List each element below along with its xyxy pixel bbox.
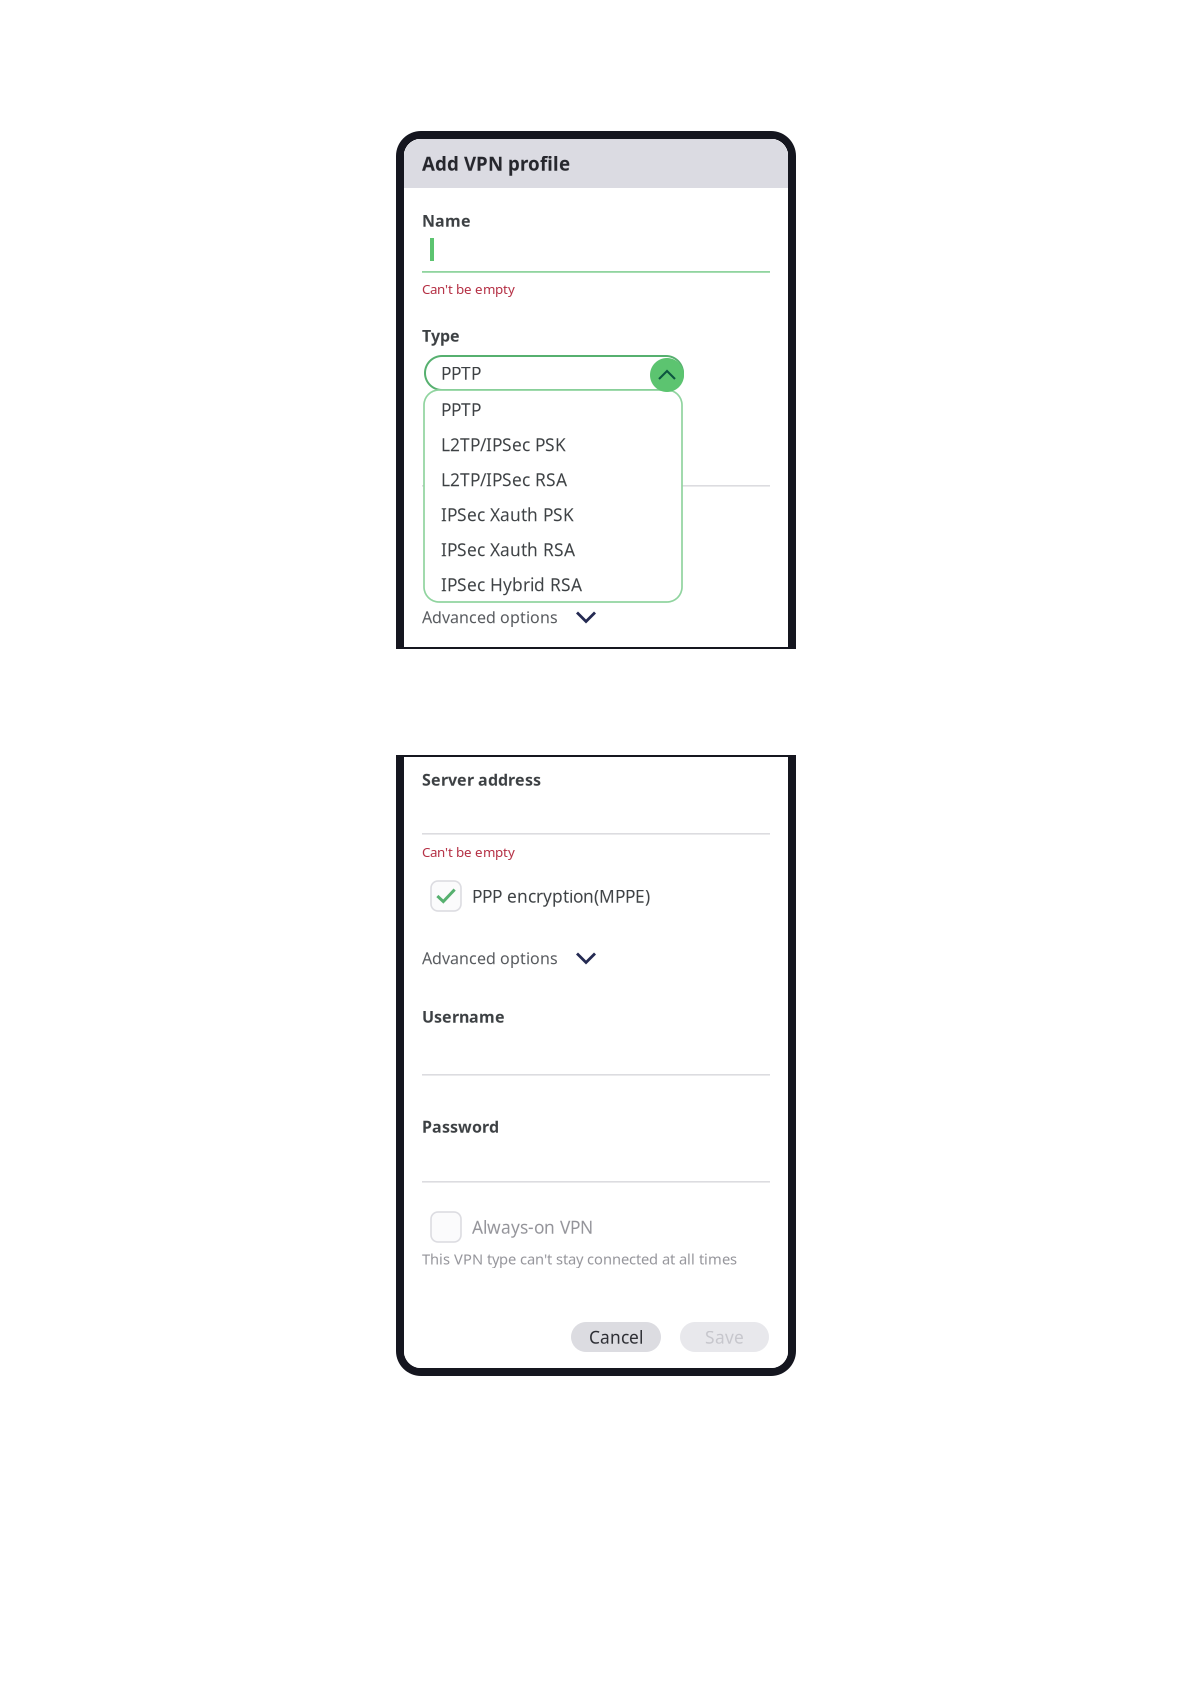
button[interactable]: Always-on VPN <box>431 1212 761 1242</box>
staticText: Cancel <box>589 1325 643 1348</box>
staticText: PPTP <box>441 398 481 421</box>
staticText: Username <box>422 1006 505 1027</box>
staticText: Type <box>422 325 460 346</box>
staticText: Password <box>422 1116 499 1137</box>
staticText: Always-on VPN <box>472 1215 593 1238</box>
button[interactable]: PPTP <box>424 392 682 427</box>
staticText: Name <box>422 210 471 231</box>
staticText: Save <box>705 1325 744 1348</box>
button[interactable]: Save <box>680 1322 769 1352</box>
staticText: L2TP/IPSec PSK <box>441 433 566 456</box>
button[interactable]: IPSec Xauth PSK <box>424 497 682 532</box>
staticText: Add VPN profile <box>422 151 570 176</box>
staticText: L2TP/IPSec RSA <box>441 468 567 491</box>
staticText: Password <box>422 1116 499 1137</box>
button[interactable]: L2TP/IPSec RSA <box>424 462 682 497</box>
staticText: Cancel <box>589 1325 643 1348</box>
button[interactable]: Advanced options <box>422 948 722 968</box>
button[interactable]: PPTP <box>425 356 683 390</box>
staticText: IPSec Xauth RSA <box>441 538 575 561</box>
staticText: IPSec Xauth PSK <box>441 503 574 526</box>
button[interactable]: PPP encryption(MPPE) <box>431 881 761 911</box>
staticText: Server address <box>422 769 541 790</box>
staticText: L2TP/IPSec RSA <box>441 468 567 491</box>
staticText: Advanced options <box>422 606 558 628</box>
button[interactable]: PPP encryption(MPPE) <box>431 881 761 911</box>
staticText: Type <box>422 325 460 346</box>
staticText: IPSec Xauth PSK <box>441 503 574 526</box>
staticText: Can't be empty <box>422 280 515 298</box>
staticText: This VPN type can't stay connected at al… <box>422 1249 737 1268</box>
button[interactable]: Advanced options <box>422 607 722 627</box>
button[interactable]: Advanced options <box>422 607 722 627</box>
staticText: Advanced options <box>422 947 558 969</box>
staticText: PPP encryption(MPPE) <box>472 884 650 907</box>
staticText: PPTP <box>441 361 481 384</box>
button[interactable]: Cancel <box>571 1322 661 1352</box>
staticText: IPSec Xauth RSA <box>441 538 575 561</box>
staticText: PPP encryption(MPPE) <box>472 884 650 907</box>
button[interactable]: Collapse type list <box>650 358 684 392</box>
staticText: Can't be empty <box>422 843 515 861</box>
button[interactable]: PPTP <box>424 392 682 427</box>
button[interactable]: IPSec Xauth RSA <box>424 532 682 567</box>
staticText: Username <box>422 1006 505 1027</box>
staticText: Save <box>705 1325 744 1348</box>
button[interactable]: Always-on VPN <box>431 1212 761 1242</box>
button[interactable]: L2TP/IPSec PSK <box>424 427 682 462</box>
button[interactable]: Save <box>680 1322 769 1352</box>
button[interactable]: PPTP <box>425 356 683 390</box>
button[interactable]: Advanced options <box>422 948 722 968</box>
staticText: PPTP <box>441 361 481 384</box>
staticText: PPTP <box>441 398 481 421</box>
button[interactable]: IPSec Xauth RSA <box>424 532 682 567</box>
button[interactable]: Collapse type list <box>650 358 684 392</box>
staticText: Name <box>422 210 471 231</box>
staticText: This VPN type can't stay connected at al… <box>422 1249 737 1268</box>
staticText: L2TP/IPSec PSK <box>441 433 566 456</box>
button[interactable]: L2TP/IPSec PSK <box>424 427 682 462</box>
staticText: Always-on VPN <box>472 1215 593 1238</box>
button[interactable]: L2TP/IPSec RSA <box>424 462 682 497</box>
staticText: Server address <box>422 769 541 790</box>
button[interactable]: Cancel <box>571 1322 661 1352</box>
staticText: IPSec Hybrid RSA <box>441 573 582 596</box>
staticText: Add VPN profile <box>422 151 570 176</box>
button[interactable]: IPSec Hybrid RSA <box>424 567 682 602</box>
staticText: Advanced options <box>422 606 558 628</box>
staticText: Can't be empty <box>422 843 515 861</box>
button[interactable]: IPSec Xauth PSK <box>424 497 682 532</box>
button[interactable]: IPSec Hybrid RSA <box>424 567 682 602</box>
staticText: IPSec Hybrid RSA <box>441 573 582 596</box>
staticText: Advanced options <box>422 947 558 969</box>
staticText: Can't be empty <box>422 280 515 298</box>
